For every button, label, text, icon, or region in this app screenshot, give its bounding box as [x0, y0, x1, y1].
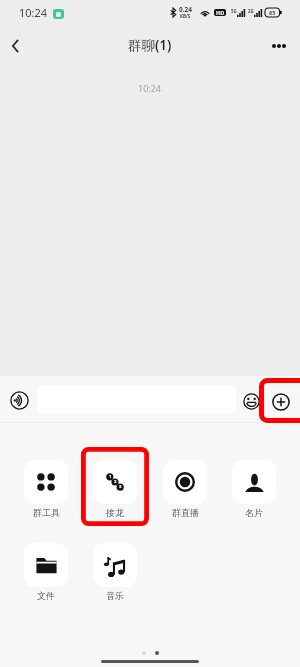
staticText: HD — [216, 9, 225, 16]
button[interactable]: More options — [272, 34, 286, 58]
button[interactable]: 群直播 — [162, 460, 208, 518]
button[interactable]: More functions — [272, 393, 290, 411]
staticText: 0.24 — [179, 5, 192, 14]
staticText: 2 — [114, 479, 117, 485]
button[interactable]: 名片 — [231, 460, 277, 518]
staticText: 群工具 — [33, 507, 60, 518]
button[interactable]: 1 — [92, 460, 138, 518]
staticText: KB/S — [180, 13, 191, 19]
staticText: 名片 — [245, 507, 263, 518]
staticText: 音乐 — [106, 590, 124, 601]
button[interactable]: Back — [0, 24, 30, 63]
staticText: 群聊(1) — [128, 36, 172, 54]
staticText: 接龙 — [106, 507, 124, 518]
button[interactable]: 音乐 — [92, 543, 138, 601]
staticText: 10:24 — [19, 5, 48, 20]
button[interactable]: Voice input — [9, 390, 29, 410]
staticText: 85 — [269, 9, 276, 16]
button[interactable]: 群工具 — [23, 460, 69, 518]
staticText: 群直播 — [172, 507, 199, 518]
staticText: 2G — [248, 8, 254, 14]
staticText: 3 — [119, 484, 122, 490]
staticText: 文件 — [37, 590, 55, 601]
button[interactable]: 文件 — [23, 543, 69, 601]
staticText: 5G — [231, 8, 237, 14]
staticText: 10:24 — [138, 82, 162, 94]
staticText: 1 — [109, 474, 112, 480]
button[interactable]: Emoji — [242, 392, 260, 410]
